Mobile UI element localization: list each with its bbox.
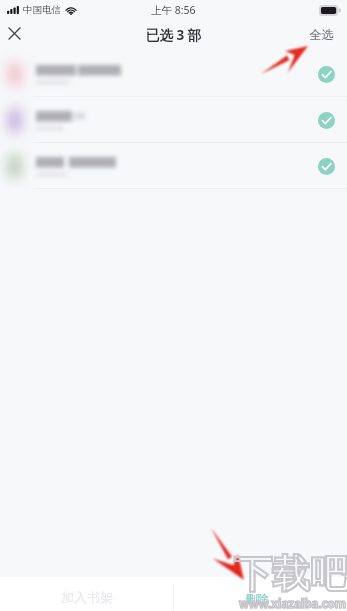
button[interactable]: Selected bbox=[311, 151, 341, 181]
button[interactable]: Selected bbox=[311, 105, 341, 135]
staticText: 删除 bbox=[245, 591, 269, 606]
button[interactable]: Selected bbox=[0, 97, 347, 143]
button[interactable]: 全选 bbox=[295, 19, 347, 51]
button[interactable]: Close bbox=[0, 19, 28, 47]
button[interactable]: 加入书架 bbox=[0, 577, 173, 611]
button[interactable]: Selected bbox=[311, 59, 341, 89]
staticText: 中国电信 bbox=[23, 4, 61, 16]
button[interactable]: Selected bbox=[0, 143, 347, 189]
staticText: 上午 8:56 bbox=[151, 3, 196, 17]
staticText: www.xiazaiba.com bbox=[239, 596, 346, 611]
staticText: 已选 3 部 bbox=[146, 26, 202, 44]
button[interactable]: Selected bbox=[0, 51, 347, 97]
staticText: 全选 bbox=[309, 27, 334, 43]
staticText: 加入书架 bbox=[61, 589, 113, 605]
staticText: 下载吧 bbox=[234, 550, 347, 598]
button[interactable]: 删除 bbox=[174, 577, 347, 611]
